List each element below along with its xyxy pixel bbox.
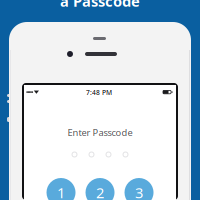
button[interactable]: 2 bbox=[85, 178, 114, 200]
staticText: a Passcode bbox=[60, 0, 140, 11]
staticText: Enter Passcode bbox=[67, 126, 132, 139]
staticText: 3 bbox=[135, 183, 143, 200]
staticText: 7:48 PM bbox=[86, 88, 112, 97]
button[interactable]: 3 bbox=[124, 178, 153, 200]
staticText: 2 bbox=[96, 183, 104, 200]
button[interactable]: 1 bbox=[46, 178, 75, 200]
staticText: 1 bbox=[57, 183, 65, 200]
